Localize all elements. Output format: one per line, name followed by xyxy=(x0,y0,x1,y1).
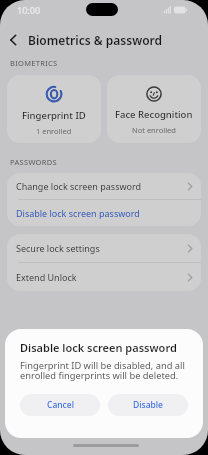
button[interactable]: Cancel xyxy=(20,394,100,416)
button[interactable]: Change lock screen password xyxy=(7,173,201,199)
staticText: Fingerprint ID will be disabled, and all… xyxy=(20,359,185,382)
button[interactable]: Fingerprint ID xyxy=(7,75,101,143)
button[interactable]: Disable xyxy=(108,394,188,416)
staticText: Biometrics & password xyxy=(28,32,163,48)
staticText: Extend Unlock xyxy=(16,271,77,283)
button[interactable]: Face Recognition xyxy=(107,75,201,143)
staticText: 10:00 xyxy=(17,4,41,16)
staticText: PASSWORDS xyxy=(10,157,57,167)
button[interactable]: Disable lock screen password xyxy=(7,200,201,226)
staticText: Disable lock screen password xyxy=(16,207,140,219)
staticText: 1 enrolled xyxy=(36,126,72,136)
staticText: Disable lock screen password xyxy=(20,340,177,355)
staticText: Secure lock settings xyxy=(16,242,100,254)
staticText: Change lock screen password xyxy=(16,180,142,192)
staticText: Face Recognition xyxy=(115,108,193,121)
staticText: Fingerprint ID xyxy=(22,109,86,122)
button[interactable] xyxy=(0,27,26,53)
staticText: BIOMETRICS xyxy=(10,58,58,68)
button[interactable]: Extend Unlock xyxy=(7,263,201,291)
button[interactable]: Secure lock settings xyxy=(7,234,201,262)
staticText: Not enrolled xyxy=(132,125,176,135)
staticText: Cancel xyxy=(47,399,74,411)
staticText: Disable xyxy=(133,399,163,411)
